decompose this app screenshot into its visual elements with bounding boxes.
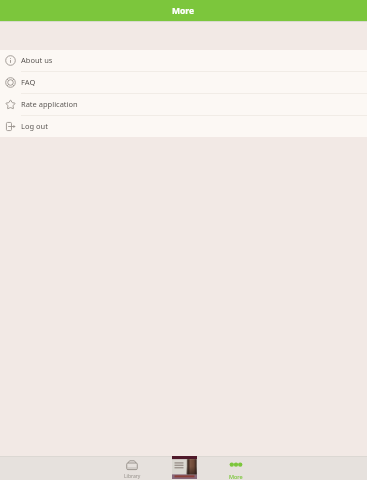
button[interactable]: Now playing [158, 457, 210, 480]
staticText: More [229, 473, 243, 480]
staticText: Library [124, 473, 141, 480]
button[interactable]: Library [106, 457, 158, 480]
button[interactable]: FAQ [0, 72, 367, 93]
button[interactable]: Log out [0, 116, 367, 137]
staticText: Log out [21, 121, 48, 131]
staticText: About us [21, 55, 53, 65]
staticText: More [172, 5, 195, 17]
staticText: Rate application [21, 99, 78, 109]
staticText: FAQ [21, 77, 36, 87]
button[interactable]: About us [0, 50, 367, 71]
button[interactable]: More [210, 457, 262, 480]
button[interactable]: Rate application [0, 94, 367, 115]
